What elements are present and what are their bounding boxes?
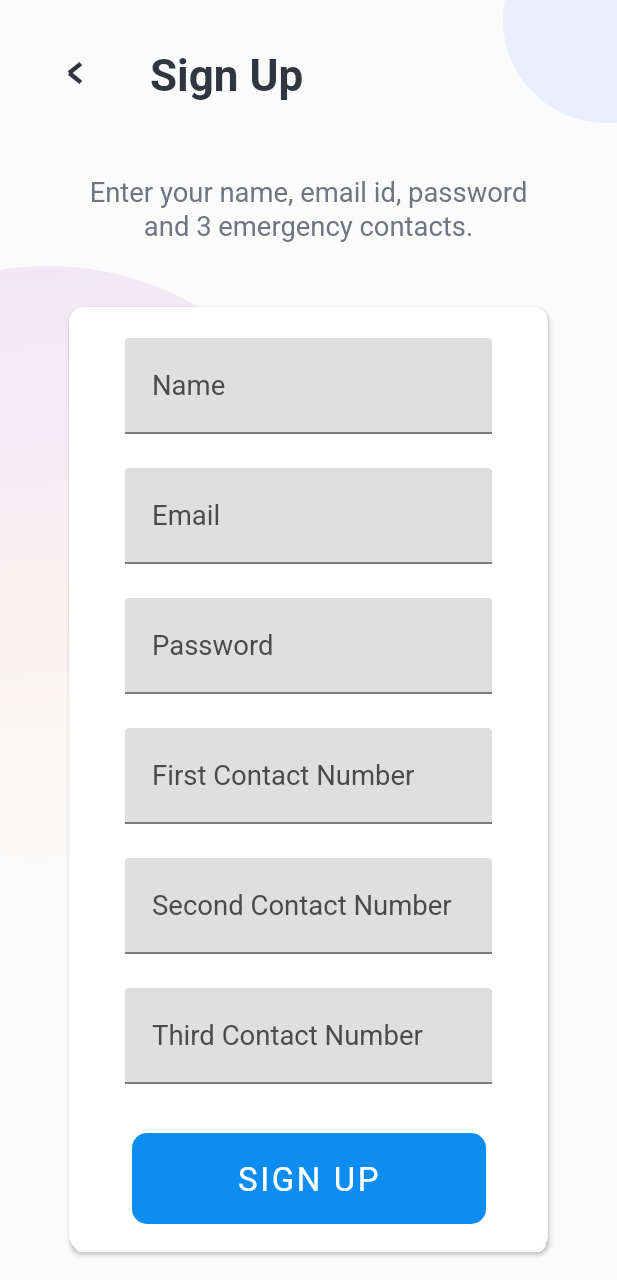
staticText: Third Contact Number bbox=[152, 1019, 423, 1051]
staticText: Sign Up bbox=[150, 50, 304, 102]
staticText: Enter your name, email id, password and … bbox=[0, 177, 617, 242]
button[interactable]: Second Contact Number bbox=[125, 858, 492, 952]
staticText: Password bbox=[152, 629, 274, 661]
staticText: First Contact Number bbox=[152, 759, 415, 791]
staticText: Name bbox=[152, 369, 226, 401]
button[interactable]: First Contact Number bbox=[125, 728, 492, 822]
staticText: Second Contact Number bbox=[152, 889, 452, 921]
button[interactable]: Third Contact Number bbox=[125, 988, 492, 1082]
button[interactable]: Back bbox=[51, 49, 99, 97]
button[interactable]: Name bbox=[125, 338, 492, 432]
staticText: SIGN UP bbox=[238, 1160, 382, 1199]
staticText: Email bbox=[152, 499, 221, 531]
button[interactable]: SIGN UP bbox=[132, 1133, 486, 1224]
button[interactable]: Password bbox=[125, 598, 492, 692]
button[interactable]: Email bbox=[125, 468, 492, 562]
